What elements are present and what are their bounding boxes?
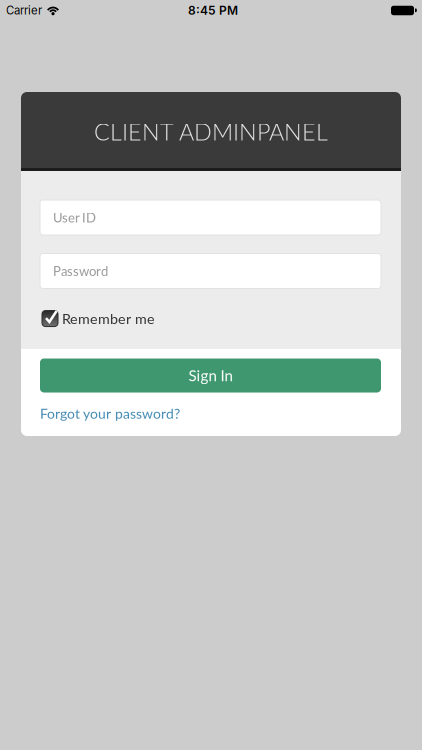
staticText: Remember me [62, 310, 155, 327]
button[interactable]: User ID [40, 200, 381, 235]
button[interactable]: Password [40, 253, 381, 288]
staticText: Carrier [6, 4, 42, 17]
button[interactable]: Sign In [40, 358, 381, 392]
staticText: 8:45 PM [188, 3, 238, 18]
staticText: Forgot your password? [40, 405, 180, 422]
button[interactable]: Remember me [40, 310, 155, 327]
staticText: User ID [53, 210, 96, 225]
staticText: Password [53, 263, 108, 279]
button[interactable]: Forgot your password? [40, 405, 180, 422]
staticText: CLIENT ADMINPANEL [94, 117, 328, 145]
staticText: Sign In [188, 366, 232, 385]
